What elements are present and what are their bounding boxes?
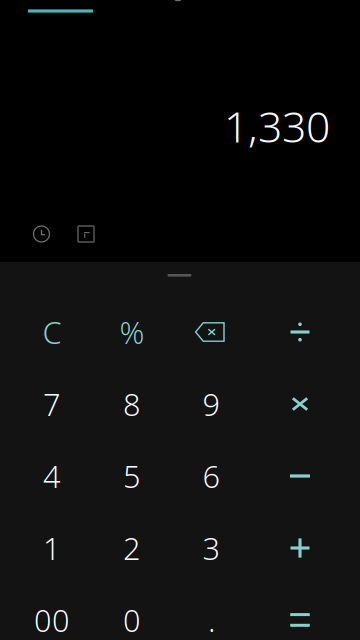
staticText: 4	[43, 456, 61, 496]
button[interactable]: Percent	[92, 296, 172, 368]
button[interactable]: Plus	[260, 512, 340, 584]
button[interactable]: 0	[92, 584, 172, 640]
button[interactable]: Minus	[260, 440, 340, 512]
staticText: 7	[43, 384, 61, 424]
button[interactable]: 2	[92, 512, 172, 584]
button[interactable]: History	[24, 217, 58, 251]
button[interactable]: 8	[92, 368, 172, 440]
button[interactable]: 5	[92, 440, 172, 512]
staticText: 5	[123, 456, 141, 496]
staticText: 2	[123, 528, 141, 568]
staticText: 8	[123, 384, 141, 424]
staticText: 6	[202, 456, 220, 496]
button[interactable]: 4	[12, 440, 92, 512]
staticText: 00	[34, 600, 70, 640]
button[interactable]: 00	[12, 584, 92, 640]
staticText: .	[208, 600, 215, 640]
button[interactable]: Divide	[260, 296, 340, 368]
staticText: Budget	[140, 0, 200, 2]
button[interactable]: 1	[12, 512, 92, 584]
button[interactable]: Unit converter	[69, 217, 103, 251]
staticText: 0	[123, 600, 141, 640]
staticText: %	[119, 312, 144, 352]
staticText: 1	[43, 528, 61, 568]
button[interactable]: Equals	[260, 584, 340, 640]
button[interactable]: 6	[171, 440, 251, 512]
staticText: C	[42, 312, 61, 352]
button[interactable]: Multiply	[260, 368, 340, 440]
button[interactable]: C	[12, 296, 92, 368]
button[interactable]: Calculator tab	[5, 0, 115, 16]
button[interactable]: 7	[12, 368, 92, 440]
button[interactable]: 3	[171, 512, 251, 584]
staticText: 3	[202, 528, 220, 568]
button[interactable]: Budget tab	[115, 0, 225, 16]
staticText: 1,330	[224, 98, 330, 154]
staticText: 9	[202, 384, 220, 424]
button[interactable]: Delete	[170, 296, 250, 368]
button[interactable]: 9	[171, 368, 251, 440]
button[interactable]: .	[171, 584, 251, 640]
